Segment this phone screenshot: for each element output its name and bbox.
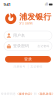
staticText: 忘记密码 <box>37 44 49 48</box>
staticText: 用户名 <box>13 33 25 38</box>
staticText: 9:41 <box>3 2 10 7</box>
button[interactable]: 忘记密码 <box>37 44 49 48</box>
button[interactable]: 登录 <box>5 56 51 62</box>
button[interactable]: 注册账号 | 忘记密码 <box>13 65 42 68</box>
staticText: 浦发银行 <box>19 12 51 22</box>
button[interactable]: 《服务协议》 <box>16 92 34 95</box>
staticText: 登录密码 <box>13 43 29 48</box>
staticText: 登录 <box>24 57 32 62</box>
staticText: SPD BANK <box>19 22 33 25</box>
staticText: ıll <box>45 3 48 6</box>
staticText: 注册账号 | 忘记密码 <box>13 65 42 68</box>
staticText: 登录即同意 <box>1 92 16 95</box>
staticText: 和 <box>34 92 37 95</box>
button[interactable]: 《隐私政策》 <box>37 92 55 95</box>
staticText: 《服务协议》 <box>16 92 34 95</box>
staticText: 《隐私政策》 <box>37 92 55 95</box>
